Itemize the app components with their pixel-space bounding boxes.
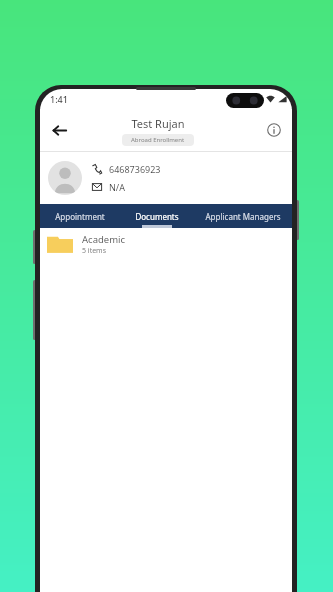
staticText: Applicant Managers (205, 211, 281, 222)
button[interactable]: 6468736923 (40, 152, 292, 204)
staticText: Test Rujan (131, 116, 185, 131)
staticText: Documents (135, 211, 179, 222)
button[interactable]: Information (261, 117, 287, 143)
staticText: Academic (82, 233, 126, 246)
button[interactable]: Academic (40, 228, 292, 260)
button[interactable]: Appointment (40, 204, 119, 228)
staticText: Abroad Enrollment (131, 136, 185, 144)
button[interactable]: Documents (119, 204, 194, 228)
button[interactable]: Abroad Enrollment (122, 134, 194, 146)
staticText: 5 items (82, 246, 107, 256)
staticText: N/A (109, 181, 125, 193)
button[interactable]: Back (44, 115, 74, 145)
staticText: 6468736923 (109, 163, 161, 175)
staticText: Appointment (55, 211, 105, 222)
staticText: 1:41 (50, 93, 68, 105)
button[interactable]: Applicant Managers (194, 204, 292, 228)
